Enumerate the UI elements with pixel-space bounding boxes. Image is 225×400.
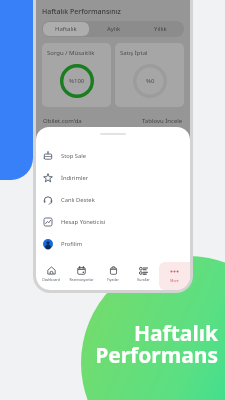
staticText: Haftalık Performans bbox=[95, 319, 218, 369]
button[interactable]: İndirimler bbox=[36, 167, 190, 189]
staticText: Tablovu İncele bbox=[142, 117, 183, 125]
staticText: Haftalık Performansınız bbox=[42, 7, 121, 17]
staticText: Dashboard bbox=[42, 277, 60, 282]
staticText: Fiyatlar bbox=[107, 277, 119, 282]
button[interactable]: Stop Sale bbox=[36, 145, 190, 167]
staticText: Haftalık bbox=[55, 25, 77, 33]
button[interactable]: Fiyatlar bbox=[97, 258, 128, 290]
staticText: Yıllık bbox=[154, 25, 167, 33]
button[interactable]: Aylık bbox=[91, 22, 136, 36]
staticText: More bbox=[170, 278, 179, 283]
staticText: Canlı Destek bbox=[61, 196, 95, 204]
button[interactable]: Kurallar bbox=[128, 258, 159, 290]
button[interactable]: Hesap Yöneticisi bbox=[36, 211, 190, 233]
staticText: Aylık bbox=[107, 25, 121, 33]
staticText: Satış İptal bbox=[120, 49, 148, 57]
button[interactable]: Profilim bbox=[36, 233, 190, 255]
button[interactable]: Yıllık bbox=[138, 22, 183, 36]
staticText: %0 bbox=[146, 77, 155, 85]
button[interactable]: Rezervasyonlar bbox=[66, 258, 97, 290]
staticText: Hesap Yöneticisi bbox=[61, 218, 106, 226]
staticText: Sorgu / Müsaitlik bbox=[47, 49, 95, 57]
staticText: %100 bbox=[69, 77, 85, 85]
button[interactable]: Canlı Destek bbox=[36, 189, 190, 211]
button[interactable]: More bbox=[159, 262, 190, 290]
button[interactable]: Dashboard bbox=[36, 258, 66, 290]
staticText: Kurallar bbox=[137, 277, 150, 282]
staticText: İndirimler bbox=[61, 174, 89, 182]
staticText: Obilet.com'da bbox=[43, 117, 82, 125]
staticText: Stop Sale bbox=[61, 152, 87, 160]
staticText: Rezervasyonlar bbox=[69, 277, 94, 282]
staticText: Profilim bbox=[61, 240, 83, 248]
button[interactable]: Haftalık bbox=[43, 22, 89, 36]
